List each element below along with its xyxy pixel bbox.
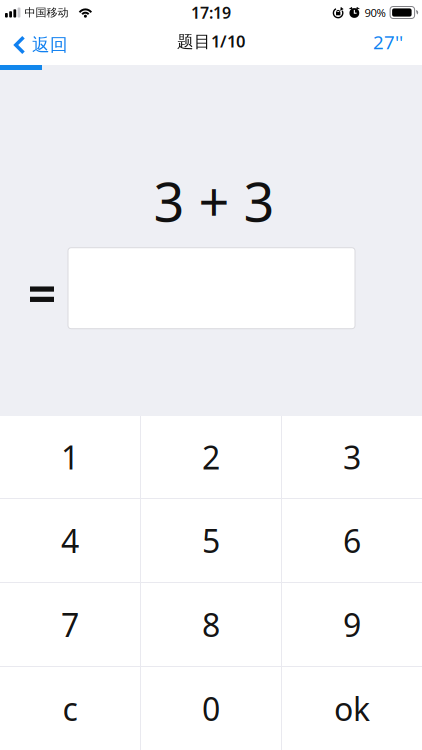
button[interactable]: ok	[282, 667, 422, 750]
button[interactable]: 7	[0, 583, 140, 666]
button[interactable]: 2	[141, 416, 281, 498]
staticText: 中国移动	[24, 6, 68, 19]
staticText: c	[62, 687, 77, 730]
button[interactable]: c	[0, 667, 140, 750]
button[interactable]: 返回	[0, 26, 68, 64]
staticText: 3 + 3	[153, 165, 274, 237]
staticText: 1	[61, 436, 79, 478]
staticText: ok	[334, 687, 370, 730]
staticText: 返回	[32, 34, 68, 56]
staticText: 90%	[365, 5, 386, 20]
button[interactable]: 0	[141, 667, 281, 750]
staticText: 27''	[373, 30, 403, 54]
staticText: 6	[343, 519, 361, 562]
staticText: 9	[343, 603, 361, 646]
staticText: 7	[61, 603, 79, 646]
staticText: 8	[202, 603, 220, 646]
button[interactable]: 5	[141, 499, 281, 582]
button[interactable]: 4	[0, 499, 140, 582]
staticText: 5	[202, 519, 220, 562]
button[interactable]: 1	[0, 416, 140, 498]
staticText: 4	[61, 519, 79, 562]
staticText: 题目1/10	[177, 30, 245, 52]
staticText: 3	[343, 436, 361, 478]
button[interactable]: 9	[282, 583, 422, 666]
button[interactable]: 6	[282, 499, 422, 582]
staticText: 0	[202, 687, 220, 730]
staticText: 17:19	[191, 2, 231, 23]
button[interactable]: 3	[282, 416, 422, 498]
staticText: 2	[202, 436, 220, 478]
button[interactable]: 8	[141, 583, 281, 666]
